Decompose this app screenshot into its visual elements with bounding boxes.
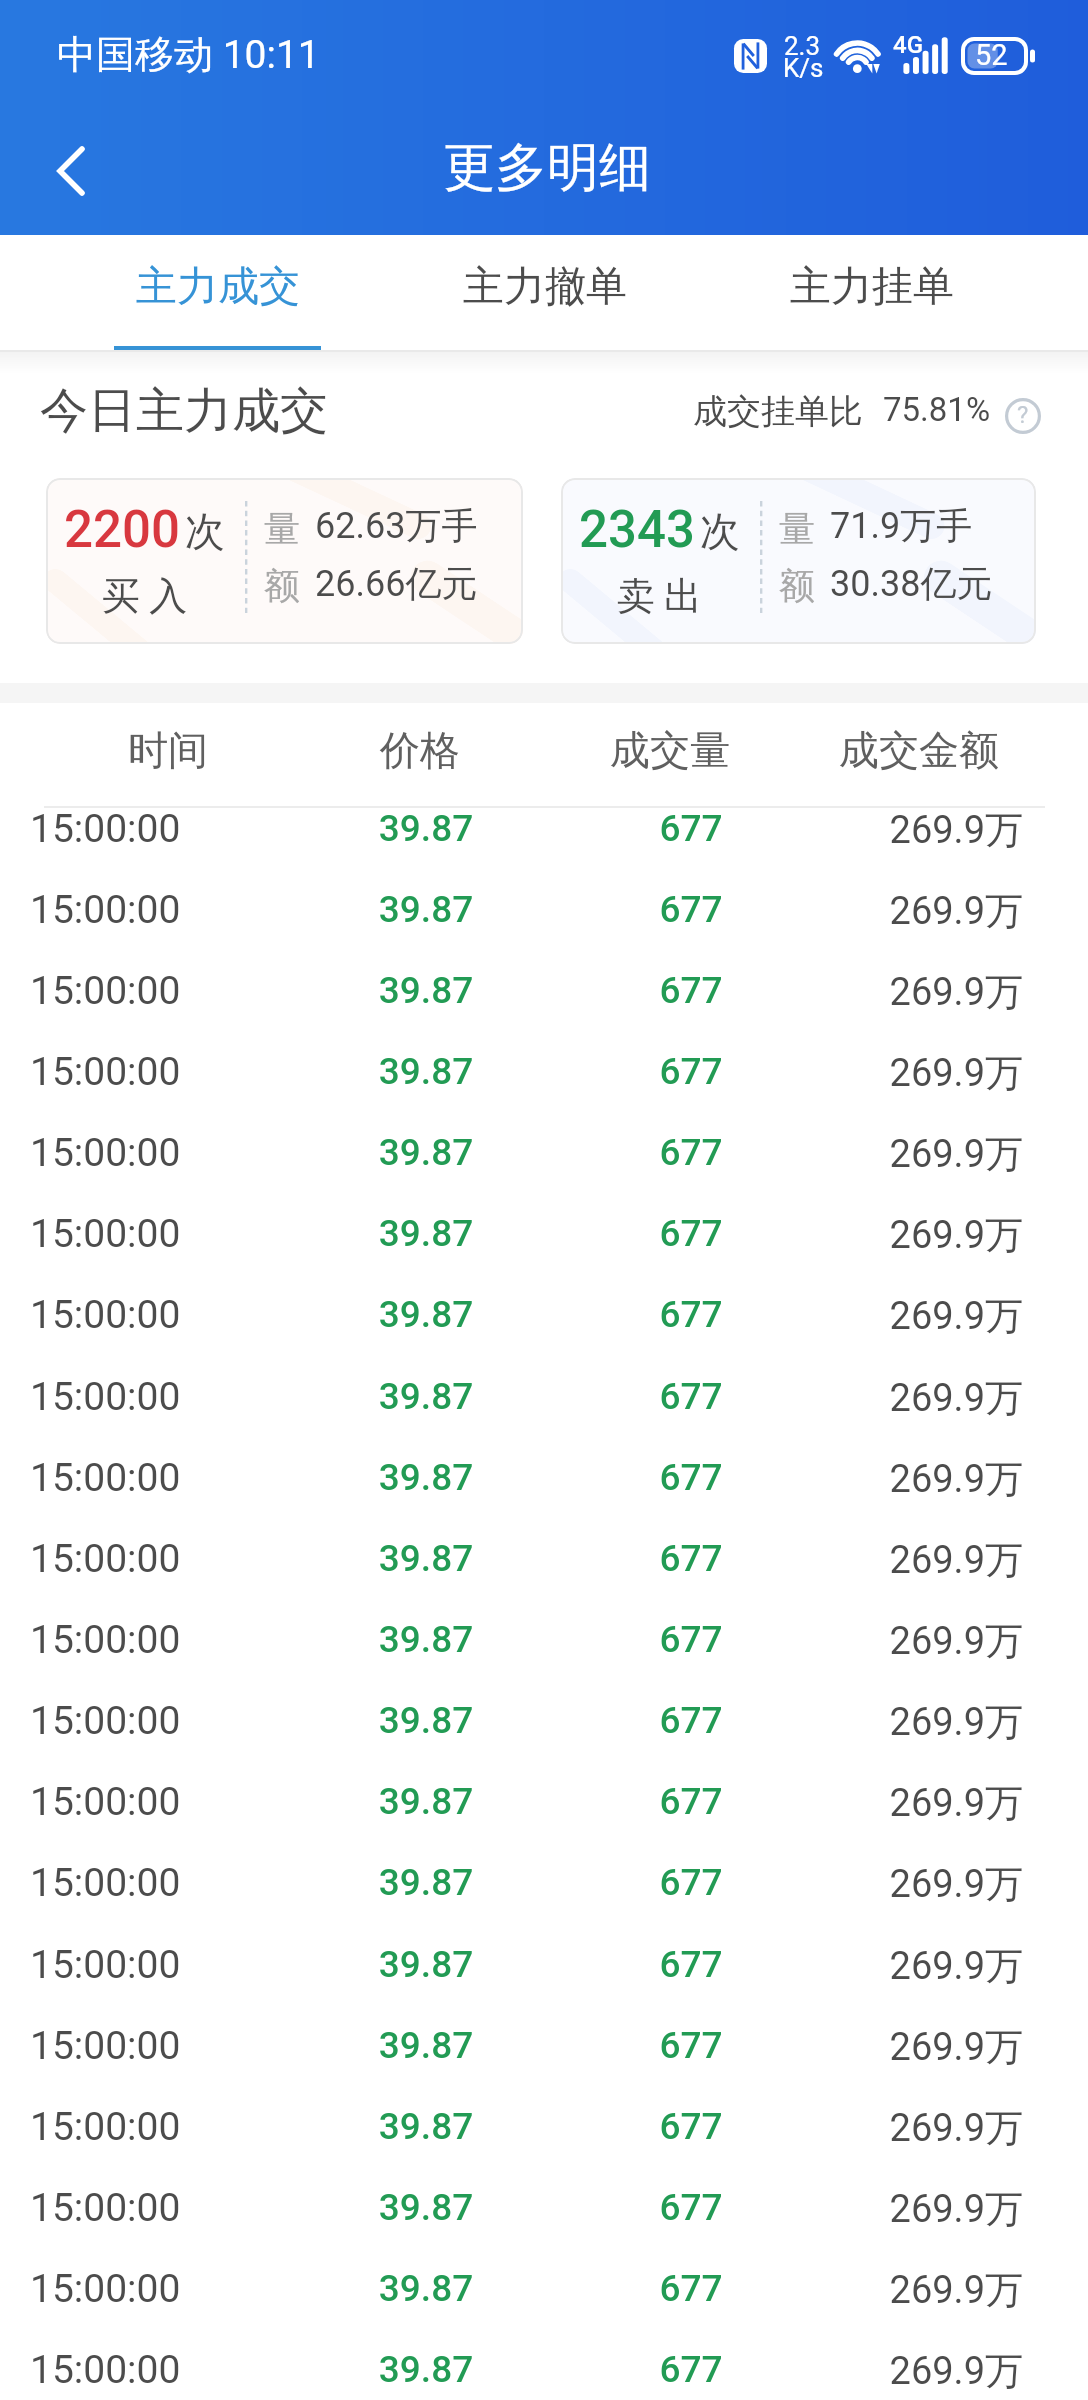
button[interactable]: 15:00:00	[0, 1698, 1088, 1779]
staticText: 677	[566, 1375, 816, 1418]
button[interactable]: 主力挂单	[708, 236, 1035, 354]
staticText: 677	[566, 807, 816, 850]
button[interactable]: 15:00:00	[0, 968, 1088, 1049]
staticText: 15:00:00	[30, 2023, 181, 2069]
staticText: 269.9万	[773, 2266, 1023, 2314]
button[interactable]: 15:00:00	[0, 1779, 1088, 1860]
staticText: 15:00:00	[30, 2185, 181, 2231]
staticText: 30.38亿元	[830, 561, 993, 606]
staticText: 677	[566, 969, 816, 1012]
staticText: 269.9万	[773, 2185, 1023, 2233]
button[interactable]: 15:00:00	[0, 1455, 1088, 1536]
button[interactable]: 2200	[46, 478, 523, 644]
button[interactable]: 15:00:00	[0, 1292, 1088, 1373]
staticText: 677	[566, 1861, 816, 1904]
button[interactable]: 15:00:00	[0, 887, 1088, 968]
button[interactable]: 主力成交	[54, 236, 381, 354]
staticText: 更多明细	[443, 135, 651, 201]
staticText: 今日主力成交	[40, 381, 328, 441]
staticText: 269.9万	[773, 1536, 1023, 1584]
button[interactable]: 15:00:00	[0, 1536, 1088, 1617]
staticText: 2343	[579, 500, 695, 560]
staticText: 269.9万	[773, 968, 1023, 1016]
staticText: 62.63万手	[315, 503, 478, 548]
button[interactable]: 15:00:00	[0, 1374, 1088, 1455]
staticText: 39.87	[300, 1456, 552, 1499]
staticText: 269.9万	[773, 1292, 1023, 1340]
button[interactable]: 15:00:00	[0, 806, 1088, 887]
staticText: 269.9万	[773, 887, 1023, 935]
staticText: 15:00:00	[30, 806, 181, 852]
button[interactable]: Help	[1005, 398, 1041, 434]
staticText: 量	[779, 506, 815, 551]
staticText: 4G	[893, 31, 923, 59]
staticText: 2.3	[784, 31, 821, 61]
staticText: 677	[566, 2348, 816, 2391]
staticText: 269.9万	[773, 1049, 1023, 1097]
button[interactable]: 15:00:00	[0, 1049, 1088, 1130]
staticText: 15:00:00	[30, 1536, 181, 1582]
staticText: 71.9万手	[830, 503, 973, 548]
staticText: 269.9万	[773, 2104, 1023, 2152]
staticText: 677	[566, 1618, 816, 1661]
staticText: 39.87	[300, 1131, 552, 1174]
staticText: 主力成交	[136, 261, 300, 313]
staticText: 15:00:00	[30, 1374, 181, 1420]
staticText: 额	[264, 563, 300, 608]
staticText: 主力撤单	[463, 261, 627, 313]
staticText: 39.87	[300, 888, 552, 931]
button[interactable]: 15:00:00	[0, 1942, 1088, 2023]
staticText: 39.87	[300, 1050, 552, 1093]
staticText: 次	[185, 506, 225, 556]
staticText: 39.87	[300, 807, 552, 850]
staticText: K/s	[783, 53, 824, 83]
staticText: 时间	[0, 725, 336, 775]
staticText: 15:00:00	[30, 1860, 181, 1906]
staticText: 15:00:00	[30, 1617, 181, 1663]
staticText: 39.87	[300, 2348, 552, 2391]
staticText: 677	[566, 2024, 816, 2067]
staticText: 15:00:00	[30, 1779, 181, 1825]
staticText: 2200	[64, 500, 180, 560]
staticText: 成交挂单比	[693, 390, 863, 433]
staticText: 15:00:00	[30, 2104, 181, 2150]
staticText: 15:00:00	[30, 1211, 181, 1257]
button[interactable]: 15:00:00	[0, 1130, 1088, 1211]
staticText: 39.87	[300, 1780, 552, 1823]
staticText: 中国移动 10:11	[57, 30, 320, 79]
button[interactable]: 15:00:00	[0, 2266, 1088, 2347]
button[interactable]: 主力撤单	[381, 236, 708, 354]
staticText: 量	[264, 506, 300, 551]
staticText: 269.9万	[773, 806, 1023, 854]
staticText: 677	[566, 1293, 816, 1336]
staticText: 次	[700, 506, 740, 556]
staticText: 677	[566, 2105, 816, 2148]
staticText: 269.9万	[773, 1211, 1023, 1259]
staticText: 39.87	[300, 2186, 552, 2229]
staticText: 15:00:00	[30, 1942, 181, 1988]
staticText: 卖 出	[561, 572, 758, 620]
staticText: 269.9万	[773, 1942, 1023, 1990]
staticText: 269.9万	[773, 1130, 1023, 1178]
staticText: 269.9万	[773, 2023, 1023, 2071]
staticText: 26.66亿元	[315, 561, 478, 606]
button[interactable]: 15:00:00	[0, 1211, 1088, 1292]
staticText: ?	[1017, 401, 1029, 429]
button[interactable]: 2343	[561, 478, 1036, 644]
button[interactable]: 15:00:00	[0, 2347, 1088, 2400]
button[interactable]: 15:00:00	[0, 1860, 1088, 1941]
button[interactable]: 15:00:00	[0, 2023, 1088, 2104]
staticText: 269.9万	[773, 1860, 1023, 1908]
button[interactable]: 15:00:00	[0, 1617, 1088, 1698]
staticText: 39.87	[300, 1699, 552, 1742]
staticText: 269.9万	[773, 1698, 1023, 1746]
staticText: 677	[566, 888, 816, 931]
staticText: 677	[566, 1537, 816, 1580]
button[interactable]: 15:00:00	[0, 2185, 1088, 2266]
staticText: 39.87	[300, 2024, 552, 2067]
button[interactable]: 15:00:00	[0, 2104, 1088, 2185]
staticText: 15:00:00	[30, 887, 181, 933]
staticText: 269.9万	[773, 1617, 1023, 1665]
button[interactable]: Back	[0, 109, 128, 235]
staticText: 677	[566, 1050, 816, 1093]
